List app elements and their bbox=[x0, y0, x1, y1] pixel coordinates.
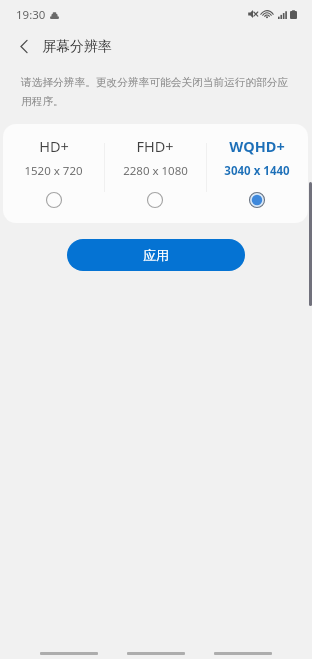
button[interactable]: Recents bbox=[40, 639, 98, 659]
staticText: 3040 x 1440 bbox=[224, 163, 290, 179]
button[interactable]: 应用 bbox=[67, 239, 245, 271]
button[interactable]: WQHD+ bbox=[206, 124, 308, 223]
button[interactable]: HD+ bbox=[3, 124, 104, 223]
button[interactable]: Back bbox=[12, 34, 36, 58]
staticText: HD+ bbox=[39, 136, 69, 156]
staticText: FHD+ bbox=[136, 136, 174, 156]
staticText: 应用 bbox=[143, 247, 169, 263]
staticText: 19:30 bbox=[16, 7, 46, 23]
button[interactable]: Home bbox=[127, 639, 185, 659]
staticText: 请选择分辨率。更改分辨率可能会关闭当前运行的部分应用程序。 bbox=[21, 76, 291, 108]
staticText: 屏幕分辨率 bbox=[42, 38, 112, 56]
staticText: WQHD+ bbox=[229, 136, 285, 156]
staticText: 2280 x 1080 bbox=[123, 163, 188, 179]
staticText: 1520 x 720 bbox=[24, 163, 83, 179]
button[interactable]: Back bbox=[214, 639, 272, 659]
button[interactable]: FHD+ bbox=[104, 124, 206, 223]
